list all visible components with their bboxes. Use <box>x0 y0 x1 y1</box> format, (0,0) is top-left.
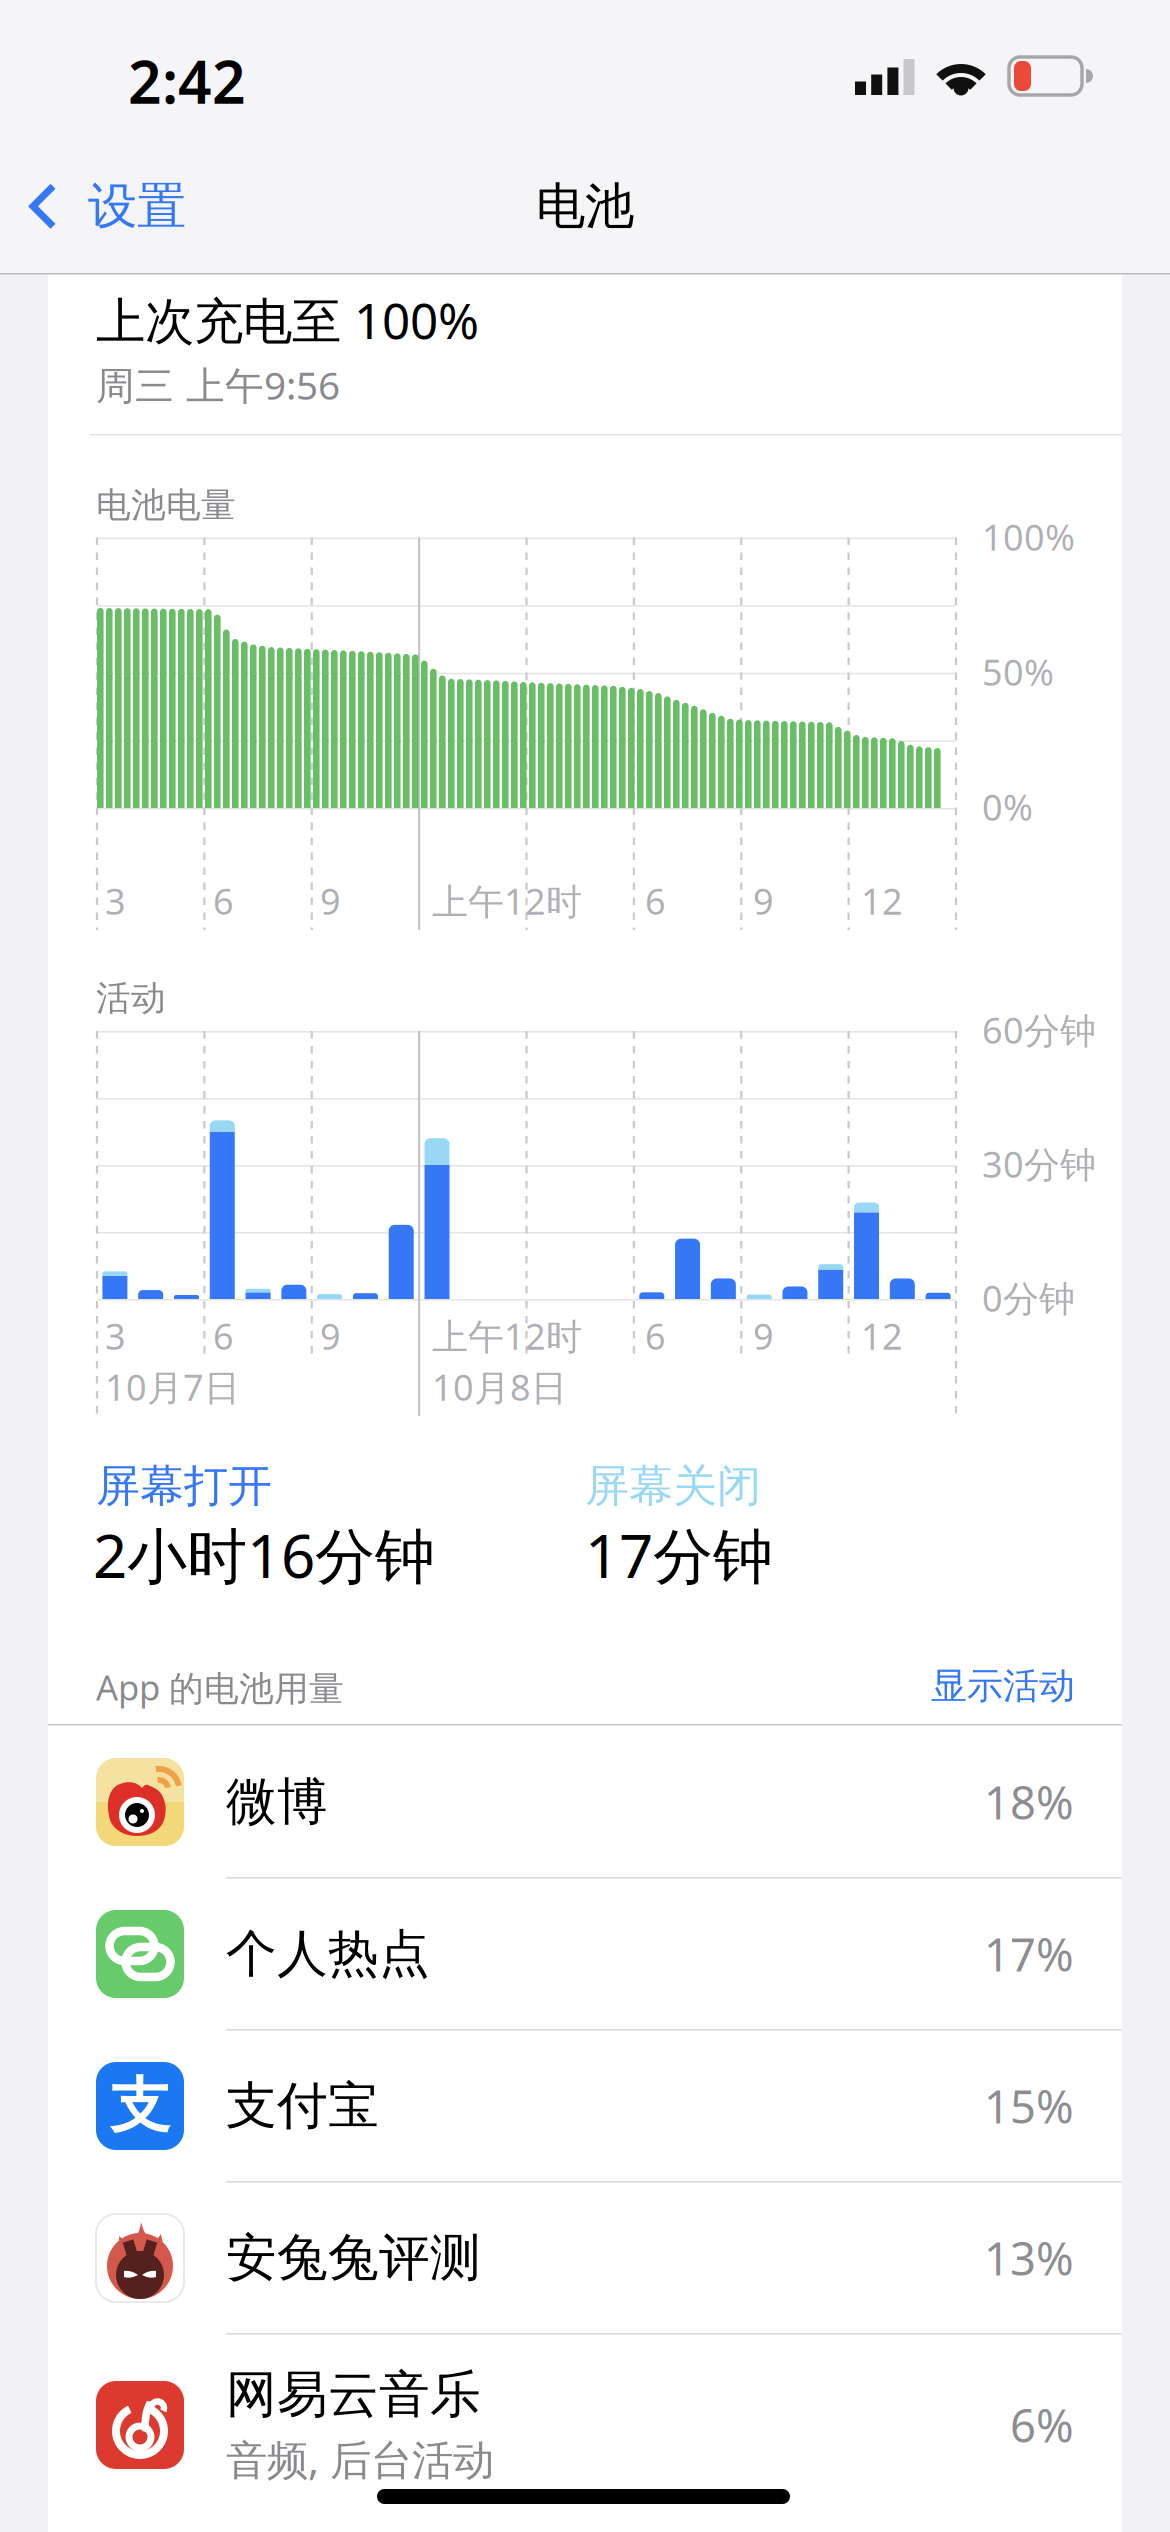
staticText: 18% <box>984 1772 1074 1832</box>
staticText: 安兔兔评测 <box>226 2227 481 2289</box>
staticText: 9 <box>753 1312 774 1360</box>
button[interactable]: 微博 <box>48 1726 1122 1878</box>
staticText: 0% <box>982 783 1033 831</box>
staticText: 100% <box>982 513 1075 561</box>
staticText: 上午12时 <box>432 877 582 925</box>
staticText: 17% <box>984 1924 1074 1984</box>
staticText: 10月8日 <box>432 1363 567 1411</box>
staticText: 9 <box>320 1312 341 1360</box>
staticText: 9 <box>320 877 341 925</box>
staticText: 上次充电至 100% <box>96 287 479 352</box>
button[interactable]: 显示活动 <box>931 1664 1075 1708</box>
staticText: 6% <box>1010 2395 1074 2455</box>
button[interactable]: 支 <box>48 2030 1122 2182</box>
staticText: 6 <box>213 877 234 925</box>
staticText: 活动 <box>96 977 166 1020</box>
staticText: 6 <box>645 1312 666 1360</box>
staticText: 支 <box>110 2069 170 2143</box>
staticText: 17分钟 <box>585 1515 773 1595</box>
staticText: 支付宝 <box>226 2075 379 2137</box>
staticText: App 的电池用量 <box>96 1664 344 1710</box>
staticText: 13% <box>984 2228 1074 2288</box>
staticText: 0分钟 <box>982 1274 1075 1322</box>
staticText: 网易云音乐 <box>226 2363 481 2426</box>
staticText: 12 <box>861 877 903 925</box>
staticText: 上午12时 <box>432 1312 582 1360</box>
staticText: 12 <box>861 1312 903 1360</box>
staticText: 30分钟 <box>982 1140 1096 1188</box>
staticText: 音频, 后台活动 <box>226 2432 494 2487</box>
staticText: 设置 <box>88 176 186 237</box>
button[interactable]: 个人热点 <box>48 1878 1122 2030</box>
staticText: 9 <box>753 877 774 925</box>
staticText: 2小时16分钟 <box>93 1515 435 1595</box>
staticText: 3 <box>105 1312 126 1360</box>
staticText: 3 <box>105 877 126 925</box>
staticText: 50% <box>982 648 1054 696</box>
staticText: 屏幕打开 <box>96 1459 272 1513</box>
staticText: 2:42 <box>128 42 246 120</box>
button[interactable]: 网易云音乐 <box>48 2334 1122 2516</box>
staticText: 微博 <box>226 1771 328 1833</box>
staticText: 电池电量 <box>96 484 236 527</box>
button[interactable]: 设置 <box>30 176 186 237</box>
staticText: 电池 <box>536 176 634 237</box>
staticText: 个人热点 <box>226 1923 430 1985</box>
button[interactable]: 安兔兔评测 <box>48 2182 1122 2334</box>
staticText: 15% <box>984 2076 1074 2136</box>
staticText: 显示活动 <box>931 1664 1075 1708</box>
staticText: 屏幕关闭 <box>585 1459 761 1513</box>
staticText: 10月7日 <box>105 1363 240 1411</box>
staticText: 60分钟 <box>982 1006 1096 1054</box>
staticText: 周三 上午9:56 <box>96 359 340 410</box>
staticText: 6 <box>645 877 666 925</box>
staticText: 6 <box>213 1312 234 1360</box>
